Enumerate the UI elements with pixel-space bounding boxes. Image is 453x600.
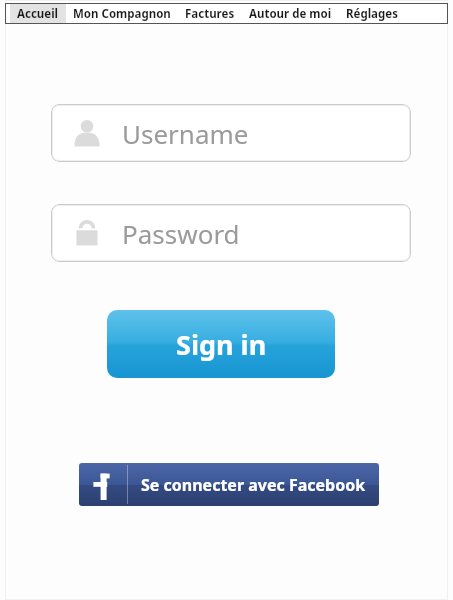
staticText: Accueil xyxy=(17,6,59,22)
button[interactable]: Sign in xyxy=(107,310,335,378)
staticText: Factures xyxy=(185,6,235,22)
button[interactable]: User xyxy=(51,104,411,162)
button[interactable]: Lock xyxy=(51,204,411,262)
staticText: Réglages xyxy=(346,6,398,22)
button[interactable]: Réglages xyxy=(339,3,405,24)
button[interactable]: Autour de moi xyxy=(242,3,339,24)
staticText: Mon Compagnon xyxy=(73,6,171,22)
button[interactable]: Se connecter avec Facebook xyxy=(79,463,379,506)
staticText: Sign in xyxy=(176,326,267,363)
button[interactable]: Factures xyxy=(178,3,242,24)
staticText: Se connecter avec Facebook xyxy=(141,474,366,496)
staticText: Username xyxy=(122,116,249,151)
button[interactable]: Mon Compagnon xyxy=(66,3,178,24)
other: User xyxy=(70,116,104,150)
other: Lock xyxy=(70,216,104,250)
staticText: Password xyxy=(122,216,240,251)
button[interactable]: Accueil xyxy=(10,3,66,24)
staticText: Autour de moi xyxy=(249,6,332,22)
